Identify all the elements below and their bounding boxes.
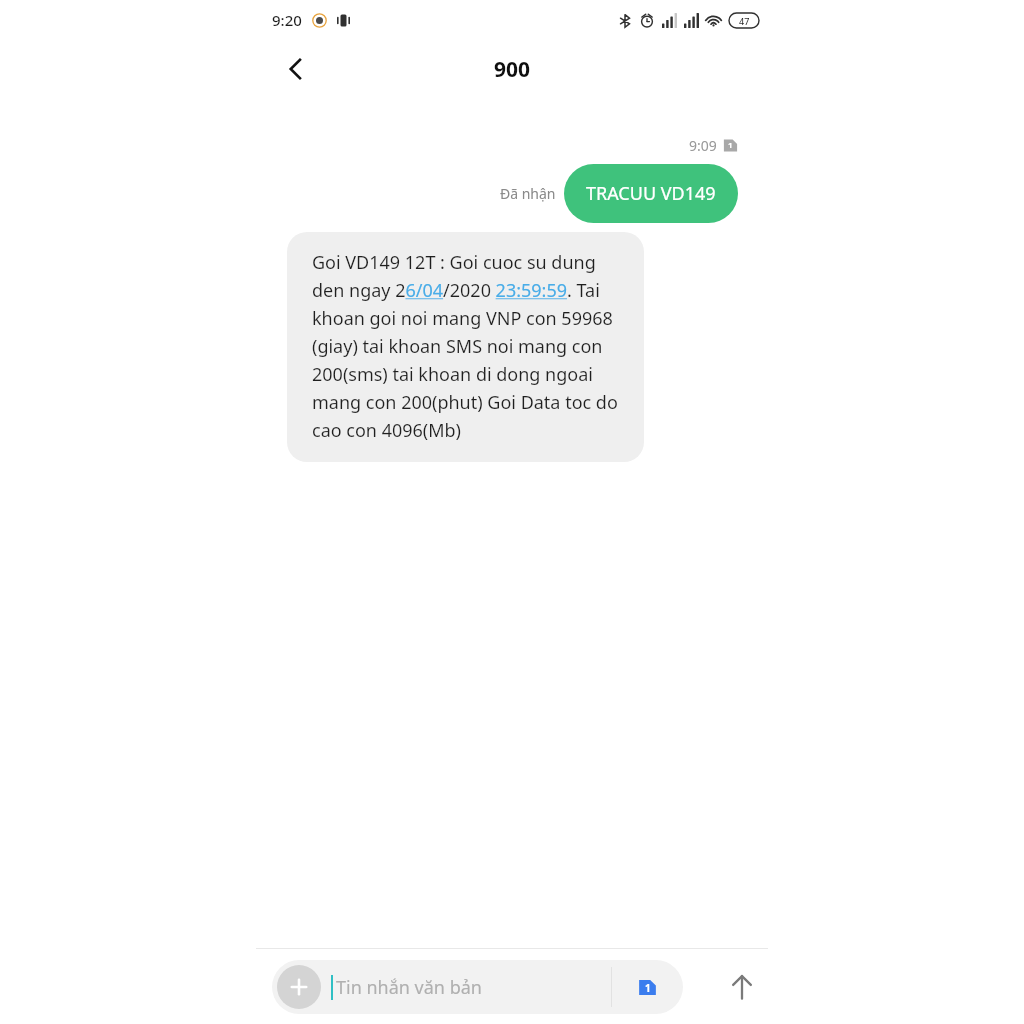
staticText: 9:20 <box>272 10 302 30</box>
staticText: 9:09 <box>689 136 717 155</box>
staticText: TRACUU VD149 <box>586 181 716 206</box>
staticText: 1 <box>728 140 733 151</box>
button[interactable]: Back <box>272 45 320 93</box>
staticText: Goi VD149 12T : Goi cuoc su dung den nga… <box>312 250 626 442</box>
button[interactable]: SIM 1 <box>612 960 683 1014</box>
button[interactable]: TRACUU VD149 <box>564 164 738 223</box>
staticText: 47 <box>739 15 750 27</box>
button[interactable]: Attach <box>272 960 683 1014</box>
staticText: Tin nhắn văn bản <box>336 975 482 1000</box>
button[interactable]: Send <box>718 963 766 1011</box>
button[interactable]: Goi VD149 12T : Goi cuoc su dung den nga… <box>287 232 644 462</box>
button[interactable]: Attach <box>277 965 321 1009</box>
staticText: 1 <box>645 981 651 994</box>
staticText: Đã nhận <box>500 184 556 203</box>
staticText: 900 <box>494 55 531 84</box>
